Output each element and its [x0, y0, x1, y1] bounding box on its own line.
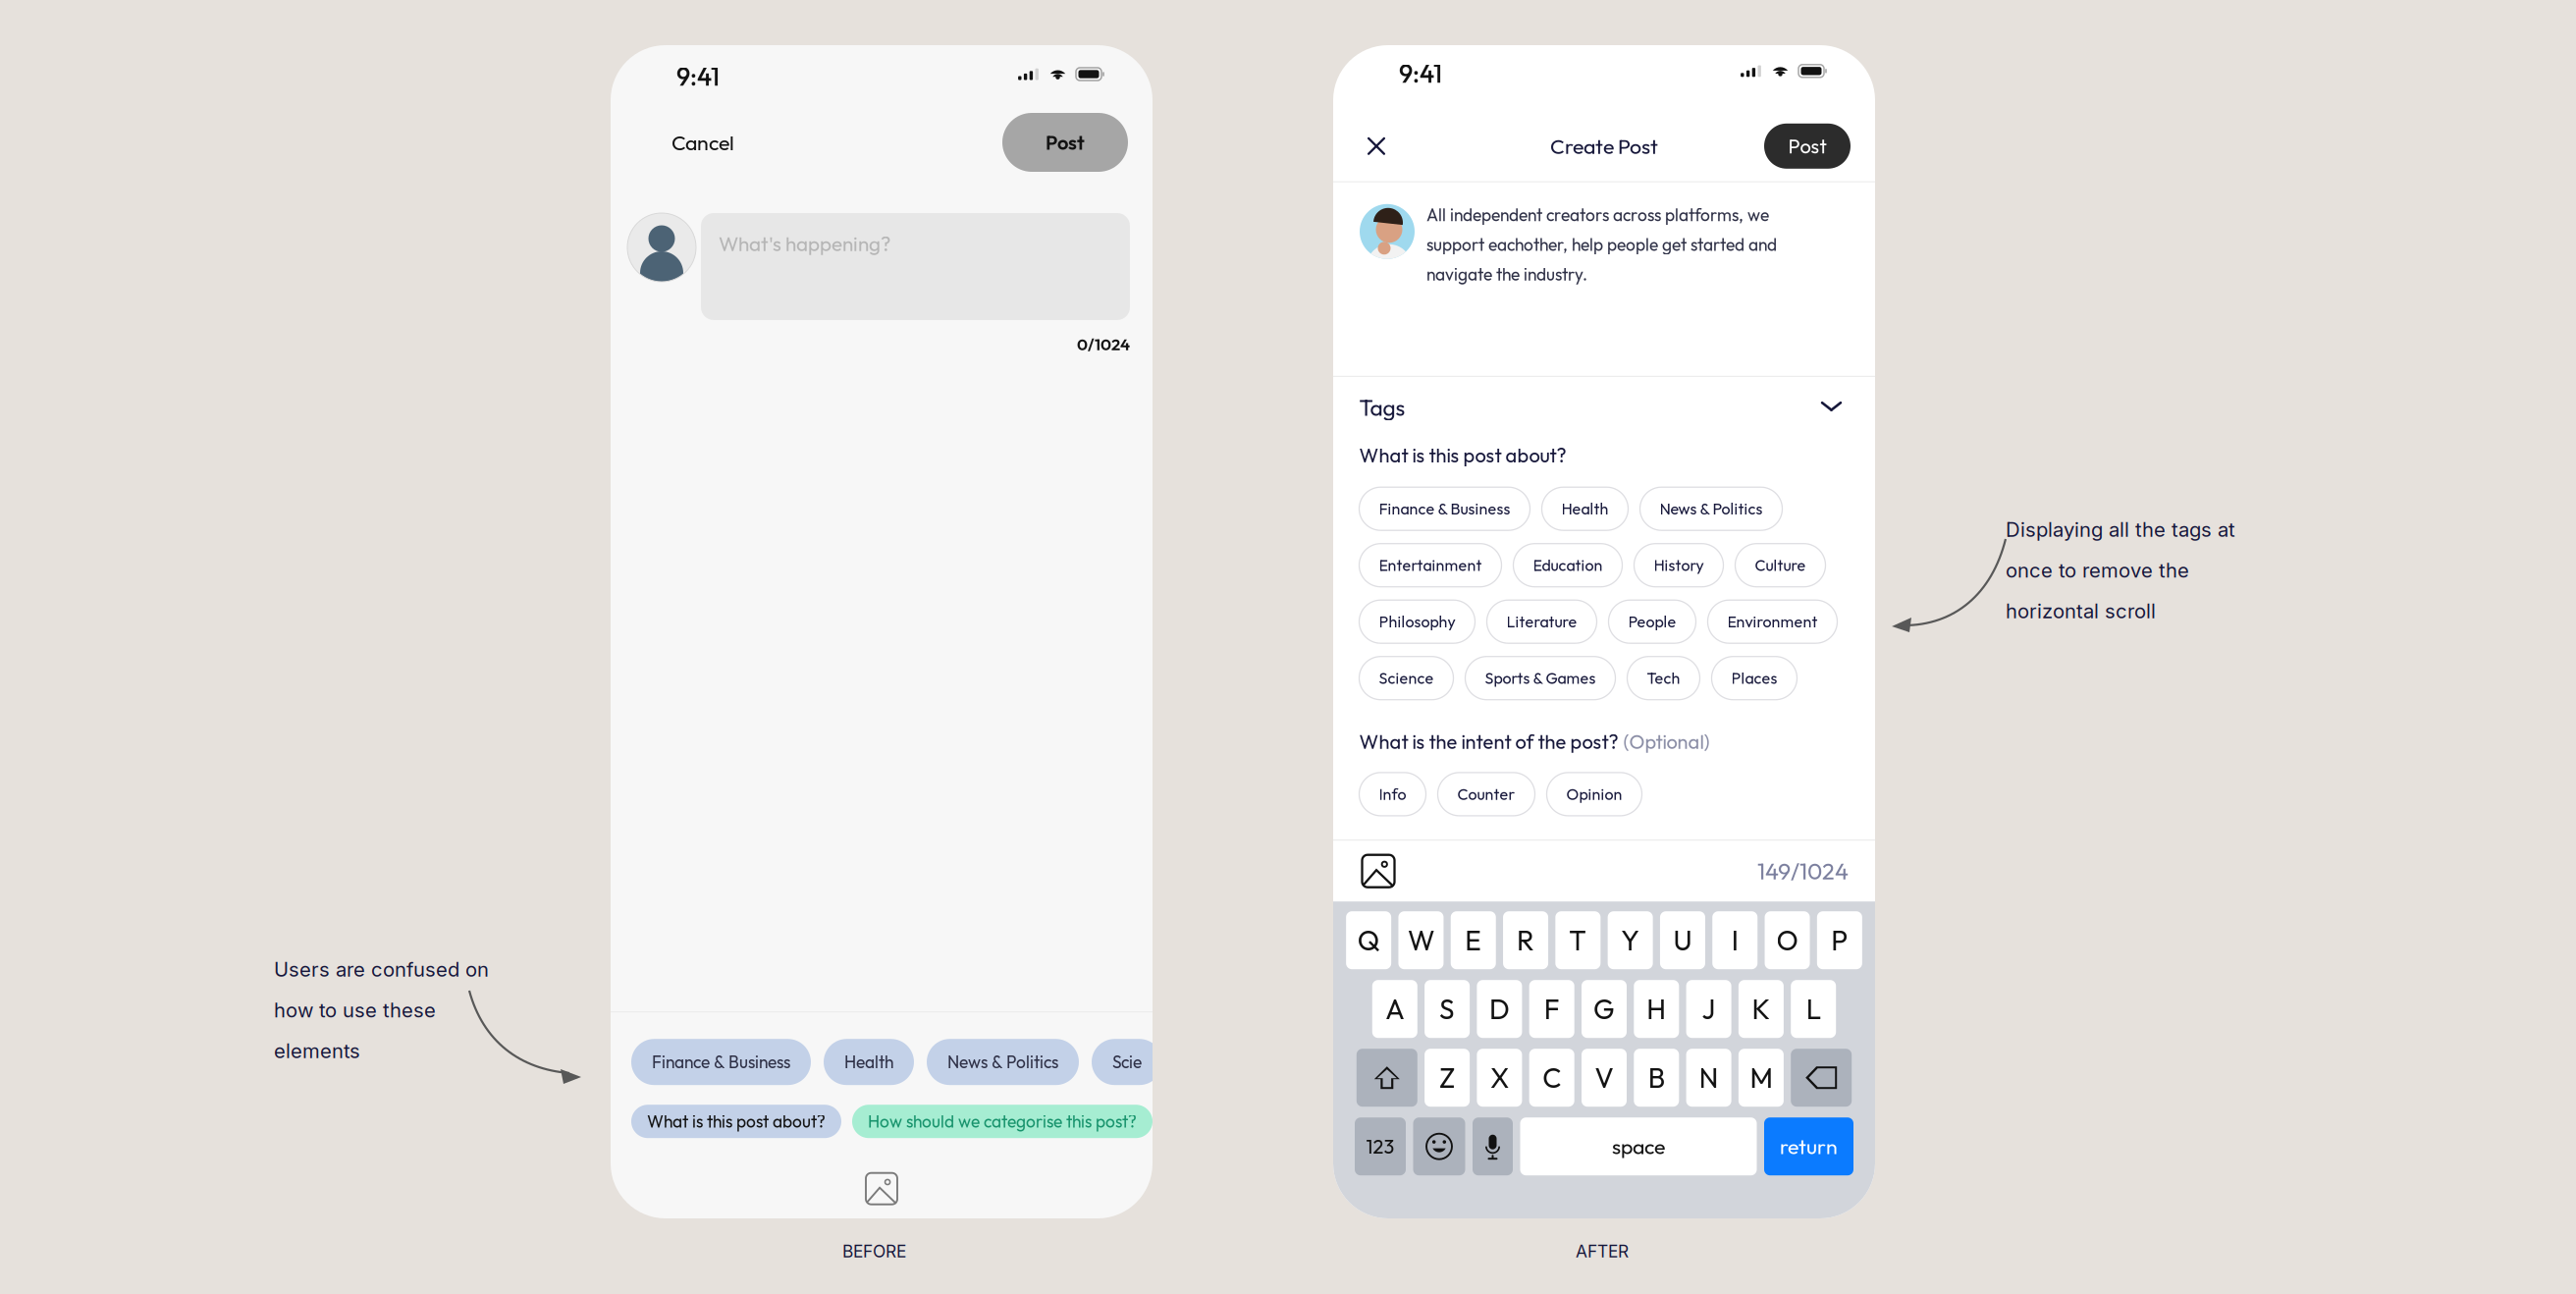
staticText: Y — [1621, 923, 1640, 958]
staticText: What is this post about? — [647, 1111, 826, 1132]
button[interactable]: M — [1739, 1049, 1784, 1107]
staticText: horizontal scroll — [2006, 599, 2156, 623]
button[interactable]: News & Politics — [927, 1039, 1079, 1085]
staticText: space — [1612, 1133, 1665, 1160]
button[interactable]: Education — [1513, 544, 1622, 587]
staticText: BEFORE — [842, 1241, 906, 1262]
staticText: M — [1750, 1060, 1772, 1095]
staticText: Sports & Games — [1485, 668, 1596, 688]
button[interactable]: Close — [1357, 126, 1396, 166]
staticText: What's happening? — [719, 231, 890, 256]
button[interactable]: Emoji keyboard — [1413, 1117, 1465, 1175]
button[interactable]: T — [1555, 911, 1601, 969]
button[interactable]: B — [1634, 1049, 1679, 1107]
staticText: I — [1732, 923, 1738, 958]
button[interactable]: How should we categorise this post? — [852, 1105, 1153, 1138]
button[interactable]: N — [1686, 1049, 1731, 1107]
staticText: how to use these — [274, 998, 436, 1022]
button[interactable]: S — [1425, 980, 1470, 1038]
staticText: All independent creators across platform… — [1426, 204, 1777, 285]
staticText: Tags — [1359, 393, 1405, 421]
staticText: once to remove the — [2006, 558, 2189, 582]
button[interactable]: space — [1520, 1117, 1757, 1175]
staticText: Places — [1731, 668, 1777, 688]
button[interactable]: Science — [1359, 657, 1453, 700]
button[interactable]: Finance & Business — [1359, 487, 1530, 530]
staticText: X — [1490, 1060, 1509, 1095]
button[interactable]: O — [1765, 911, 1810, 969]
staticText: Literature — [1506, 612, 1577, 632]
staticText: K — [1752, 992, 1770, 1026]
button[interactable]: U — [1660, 911, 1705, 969]
button[interactable]: Post — [1764, 124, 1851, 169]
staticText: 0/1024 — [1077, 334, 1130, 354]
staticText: Cancel — [671, 129, 734, 156]
button[interactable]: D — [1477, 980, 1522, 1038]
button[interactable]: People — [1609, 600, 1696, 643]
button[interactable]: Culture — [1735, 544, 1825, 587]
button[interactable]: E — [1451, 911, 1496, 969]
button[interactable]: Delete — [1791, 1049, 1852, 1107]
button[interactable]: return — [1764, 1117, 1853, 1175]
button[interactable]: Z — [1425, 1049, 1470, 1107]
button[interactable]: Post — [1002, 113, 1128, 172]
button[interactable]: Health — [824, 1039, 914, 1085]
button[interactable]: G — [1582, 980, 1627, 1038]
button[interactable]: Y — [1608, 911, 1653, 969]
button[interactable]: Cancel — [671, 120, 734, 165]
button[interactable]: F — [1529, 980, 1574, 1038]
button[interactable]: Sports & Games — [1465, 657, 1615, 700]
button[interactable]: C — [1529, 1049, 1574, 1107]
button[interactable]: K — [1739, 980, 1784, 1038]
button[interactable]: Places — [1712, 657, 1797, 700]
button[interactable]: Opinion — [1547, 773, 1642, 816]
button[interactable]: J — [1686, 980, 1731, 1038]
staticText: O — [1776, 923, 1798, 958]
button[interactable]: R — [1503, 911, 1548, 969]
button[interactable]: Environment — [1708, 600, 1837, 643]
button[interactable]: Philosophy — [1359, 600, 1475, 643]
staticText: What is the intent of the post? — [1359, 729, 1618, 754]
button[interactable]: Tech — [1627, 657, 1700, 700]
staticText: Health — [844, 1051, 893, 1073]
button[interactable]: A — [1372, 980, 1417, 1038]
button[interactable]: X — [1477, 1049, 1522, 1107]
staticText: D — [1489, 992, 1510, 1026]
button[interactable]: Info — [1359, 773, 1426, 816]
button[interactable]: V — [1582, 1049, 1627, 1107]
button[interactable]: Finance & Business — [631, 1039, 811, 1085]
staticText: G — [1593, 992, 1615, 1026]
button[interactable]: Scie — [1092, 1039, 1162, 1085]
staticText: Philosophy — [1379, 612, 1455, 632]
staticText: L — [1806, 992, 1821, 1026]
button[interactable]: I — [1712, 911, 1757, 969]
staticText: Science — [1379, 668, 1434, 688]
staticText: return — [1780, 1133, 1838, 1160]
button[interactable]: Q — [1346, 911, 1391, 969]
button[interactable]: History — [1634, 544, 1723, 587]
button[interactable]: Add photo — [1357, 849, 1400, 893]
button[interactable]: W — [1398, 911, 1444, 969]
staticText: J — [1702, 992, 1716, 1026]
button[interactable]: Entertainment — [1359, 544, 1502, 587]
staticText: Create Post — [1550, 133, 1658, 159]
staticText: Displaying all the tags at — [2006, 517, 2235, 541]
button[interactable]: 123 — [1355, 1117, 1406, 1175]
button[interactable]: Add photo — [857, 1172, 906, 1205]
button[interactable]: Literature — [1487, 600, 1597, 643]
button[interactable]: Health — [1542, 487, 1628, 530]
staticText: 9:41 — [676, 61, 720, 92]
staticText: Environment — [1727, 612, 1818, 632]
button[interactable]: L — [1791, 980, 1836, 1038]
button[interactable]: What is this post about? — [631, 1105, 841, 1138]
button[interactable]: Dictate — [1473, 1117, 1513, 1175]
button[interactable]: Collapse tags — [1814, 391, 1849, 424]
staticText: Scie — [1112, 1051, 1142, 1073]
button[interactable]: Counter — [1438, 773, 1535, 816]
button[interactable]: H — [1634, 980, 1679, 1038]
button[interactable]: P — [1817, 911, 1862, 969]
staticText: E — [1465, 923, 1482, 958]
staticText: Entertainment — [1379, 555, 1482, 575]
button[interactable]: Shift — [1357, 1049, 1417, 1107]
button[interactable]: News & Politics — [1640, 487, 1782, 530]
